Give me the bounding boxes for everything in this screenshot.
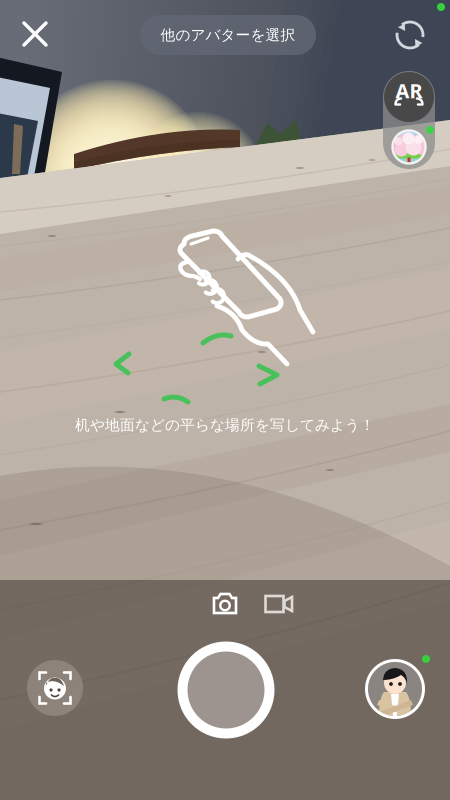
staticText: 他のアバターを選択: [160, 26, 295, 44]
button[interactable]: フェイススキャン: [27, 660, 83, 716]
staticText: AR: [395, 77, 422, 104]
button[interactable]: 閉じる: [12, 11, 58, 57]
button[interactable]: シャッター: [177, 641, 274, 738]
button[interactable]: 写真モード: [203, 584, 247, 624]
button[interactable]: ARモード: [384, 72, 434, 122]
staticText: 机や地面などの平らな場所を写してみよう！: [75, 416, 375, 434]
button[interactable]: 他のアバターを選択: [140, 15, 316, 55]
button[interactable]: ビデオモード: [257, 584, 301, 624]
button[interactable]: アバターを変更: [365, 659, 425, 719]
button[interactable]: 背景を選択: [391, 129, 426, 164]
button[interactable]: リセット: [387, 12, 433, 58]
